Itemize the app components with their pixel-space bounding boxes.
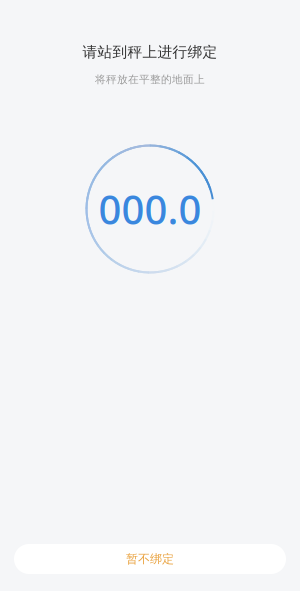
staticText: 000.0 — [98, 182, 201, 235]
staticText: 暂不绑定 — [126, 552, 174, 566]
staticText: 将秤放在平整的地面上 — [95, 73, 205, 86]
button[interactable]: 暂不绑定 — [14, 544, 286, 574]
staticText: 请站到秤上进行绑定 — [82, 43, 217, 61]
